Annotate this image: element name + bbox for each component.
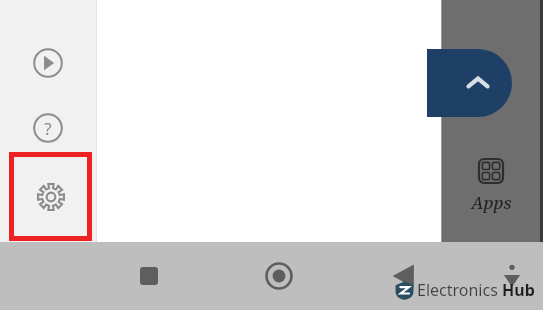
staticText: Hub (502, 279, 535, 301)
button[interactable]: Back (380, 252, 428, 300)
staticText: ? (44, 117, 52, 140)
button[interactable]: Settings (9, 152, 92, 241)
button[interactable]: Recent apps (125, 252, 173, 300)
button[interactable]: Hide keyboard (490, 254, 534, 298)
button[interactable]: Apps (455, 157, 527, 214)
button[interactable]: Home (255, 252, 303, 300)
button[interactable]: Help (25, 105, 71, 151)
staticText: Electronics (417, 279, 502, 301)
staticText: Apps (471, 191, 512, 214)
button[interactable]: Play (25, 40, 71, 86)
button[interactable]: Expand (427, 49, 512, 117)
